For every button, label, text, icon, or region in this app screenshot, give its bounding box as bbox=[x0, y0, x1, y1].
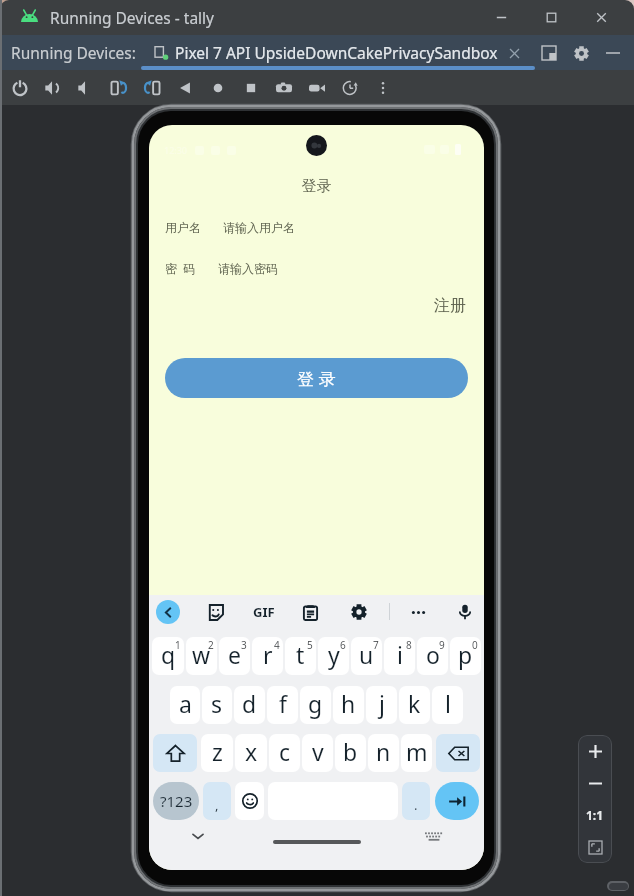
staticText: d bbox=[242, 688, 257, 719]
staticText: w bbox=[192, 639, 211, 670]
button[interactable]: Stickers bbox=[199, 596, 231, 628]
button[interactable]: Enter bbox=[435, 782, 479, 820]
button[interactable]: Close bbox=[576, 0, 626, 35]
button[interactable]: Clipboard bbox=[294, 596, 326, 628]
button[interactable]: Zoom out bbox=[578, 767, 612, 799]
staticText: Running Devices: bbox=[11, 42, 136, 63]
button[interactable]: d bbox=[234, 686, 265, 724]
staticText: 7 bbox=[373, 638, 379, 652]
button[interactable]: Change keyboard bbox=[425, 827, 443, 845]
button[interactable]: s bbox=[202, 686, 232, 724]
staticText: r bbox=[263, 639, 273, 670]
button[interactable]: Split pane bbox=[534, 38, 564, 68]
button[interactable]: l bbox=[432, 686, 463, 724]
button[interactable]: Emoji bbox=[235, 782, 264, 820]
staticText: GIF bbox=[253, 603, 275, 621]
staticText: p bbox=[458, 639, 473, 670]
staticText: 注册 bbox=[434, 296, 466, 316]
button[interactable]: Overview bbox=[234, 71, 267, 104]
button[interactable]: t bbox=[285, 637, 316, 675]
button[interactable]: Volume down bbox=[69, 71, 102, 104]
staticText: e bbox=[228, 639, 241, 670]
button[interactable]: x bbox=[235, 734, 267, 772]
button[interactable]: o bbox=[417, 637, 448, 675]
button[interactable]: Keyboard settings bbox=[343, 596, 375, 628]
staticText: 密 码 bbox=[165, 260, 196, 276]
button[interactable]: Back bbox=[168, 71, 201, 104]
button[interactable]: Maximize bbox=[526, 0, 576, 35]
button[interactable]: 用户名 bbox=[149, 213, 484, 241]
button[interactable]: Record screen bbox=[300, 71, 333, 104]
button[interactable]: History bbox=[333, 71, 366, 104]
button[interactable]: , bbox=[203, 782, 231, 820]
button[interactable]: n bbox=[368, 734, 399, 772]
button[interactable]: Rotate left bbox=[102, 71, 135, 104]
button[interactable]: Fit to screen bbox=[578, 831, 612, 863]
staticText: y bbox=[328, 639, 340, 670]
button[interactable]: 密 码 bbox=[149, 254, 484, 282]
button[interactable]: Rotate right bbox=[135, 71, 168, 104]
button[interactable]: g bbox=[300, 686, 331, 724]
staticText: t bbox=[296, 639, 305, 670]
button[interactable]: More bbox=[366, 71, 399, 104]
button[interactable]: k bbox=[399, 686, 430, 724]
staticText: z bbox=[212, 736, 223, 767]
button[interactable]: q bbox=[152, 637, 184, 675]
staticText: 8 bbox=[406, 638, 412, 652]
button[interactable]: w bbox=[186, 637, 217, 675]
button[interactable]: p bbox=[450, 637, 481, 675]
button[interactable]: Hide keyboard bbox=[188, 826, 208, 846]
staticText: 0 bbox=[472, 638, 478, 652]
button[interactable]: r bbox=[252, 637, 283, 675]
button[interactable]: 注册 bbox=[434, 296, 484, 316]
button[interactable]: Shift bbox=[153, 734, 197, 772]
button[interactable]: GIF bbox=[248, 596, 280, 628]
button[interactable]: . bbox=[402, 782, 430, 820]
button[interactable]: Back bbox=[152, 596, 184, 628]
staticText: 2 bbox=[208, 638, 214, 652]
staticText: x bbox=[245, 736, 258, 767]
button[interactable]: u bbox=[351, 637, 382, 675]
button[interactable]: Pixel 7 API UpsideDownCakePrivacySandbox bbox=[155, 42, 522, 63]
button[interactable]: Minimize bbox=[476, 0, 526, 35]
button[interactable]: y bbox=[318, 637, 349, 675]
button[interactable]: j bbox=[366, 686, 397, 724]
button[interactable]: Zoom in bbox=[578, 735, 612, 767]
staticText: c bbox=[279, 736, 291, 767]
button[interactable]: f bbox=[267, 686, 298, 724]
button[interactable]: h bbox=[333, 686, 364, 724]
button[interactable]: m bbox=[401, 734, 432, 772]
staticText: 5 bbox=[307, 638, 313, 652]
button[interactable]: a bbox=[170, 686, 200, 724]
staticText: 1 bbox=[175, 638, 181, 652]
button[interactable]: i bbox=[384, 637, 415, 675]
button[interactable]: ?123 bbox=[153, 782, 199, 820]
button[interactable]: Power bbox=[3, 71, 36, 104]
button[interactable]: Screenshot bbox=[267, 71, 300, 104]
staticText: b bbox=[343, 736, 358, 767]
button[interactable]: More options bbox=[402, 596, 434, 628]
button[interactable]: Home bbox=[201, 71, 234, 104]
staticText: 1:1 bbox=[586, 807, 604, 823]
staticText: i bbox=[397, 639, 403, 670]
button[interactable]: b bbox=[335, 734, 366, 772]
button[interactable]: Volume up bbox=[36, 71, 69, 104]
button[interactable]: Settings bbox=[566, 38, 596, 68]
staticText: 4 bbox=[274, 638, 280, 652]
button[interactable]: Voice input bbox=[449, 596, 481, 628]
button[interactable]: Close tab bbox=[506, 45, 522, 61]
button[interactable]: Hide tool window bbox=[598, 38, 628, 68]
staticText: 请输入密码 bbox=[218, 261, 278, 276]
button[interactable]: z bbox=[201, 734, 233, 772]
button[interactable]: 1:1 bbox=[578, 799, 612, 831]
button[interactable]: v bbox=[302, 734, 333, 772]
staticText: 9 bbox=[439, 638, 445, 652]
staticText: f bbox=[279, 688, 287, 719]
staticText: m bbox=[406, 736, 428, 767]
button[interactable]: e bbox=[219, 637, 250, 675]
button[interactable]: Backspace bbox=[436, 734, 480, 772]
button[interactable]: 登 录 bbox=[165, 358, 468, 398]
button[interactable]: c bbox=[269, 734, 300, 772]
staticText: q bbox=[161, 639, 176, 670]
